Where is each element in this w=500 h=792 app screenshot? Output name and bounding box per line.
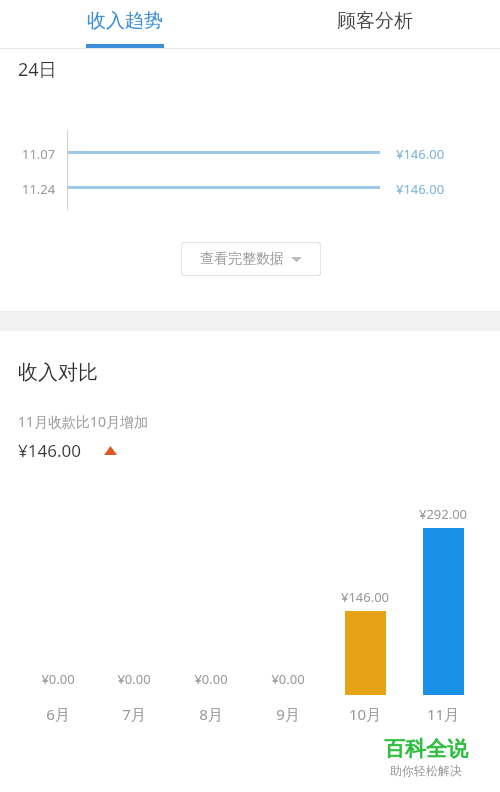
staticText: 顾客分析 [337,9,413,33]
staticText: ¥292.00 [401,505,485,523]
staticText: ¥0.00 [246,670,330,688]
staticText: 10月 [323,704,407,724]
staticText: ¥0.00 [16,670,100,688]
staticText: 收入趋势 [87,9,163,33]
staticText: 11.07 [22,145,56,163]
staticText: 收入对比 [18,360,98,385]
staticText: 百科全说 [384,736,468,762]
other: Increase [104,446,117,455]
staticText: 助你轻松解决 [390,763,462,778]
staticText: 查看完整数据 [200,250,284,268]
button[interactable]: 顾客分析 [300,0,450,48]
staticText: ¥0.00 [92,670,176,688]
staticText: 24日 [18,57,57,82]
staticText: 11月 [401,704,485,724]
staticText: ¥146.00 [323,588,407,606]
staticText: 7月 [92,704,176,724]
staticText: 6月 [16,704,100,724]
staticText: ¥146.00 [18,439,81,462]
button[interactable]: 收入趋势 [50,0,200,48]
staticText: 8月 [169,704,253,724]
staticText: ¥146.00 [396,145,445,163]
staticText: 11月收款比10月增加 [18,412,149,431]
button[interactable]: 查看完整数据 [181,242,321,276]
staticText: 11.24 [22,180,56,198]
staticText: ¥146.00 [396,180,445,198]
staticText: ¥0.00 [169,670,253,688]
staticText: 9月 [246,704,330,724]
